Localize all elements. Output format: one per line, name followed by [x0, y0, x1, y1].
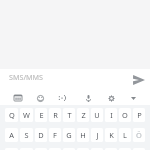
button[interactable]: Q [5, 108, 18, 122]
button[interactable]: K [105, 128, 117, 142]
button[interactable]: J [91, 128, 103, 142]
button[interactable]: U [91, 108, 103, 122]
button[interactable]: S [20, 128, 33, 142]
button[interactable]: O [119, 108, 131, 122]
staticText: G [66, 130, 72, 140]
button[interactable]: Voice input [77, 89, 99, 107]
button[interactable]: Emoji [29, 89, 51, 107]
button[interactable]: Send [127, 70, 150, 90]
staticText: L [123, 130, 127, 140]
button[interactable]: Ö [133, 128, 145, 142]
staticText: O [122, 110, 128, 120]
button[interactable]: Keyboard settings [100, 89, 122, 107]
staticText: R [53, 110, 58, 120]
button[interactable]: D [35, 128, 47, 142]
button[interactable]: W [20, 108, 33, 122]
button[interactable]: Z [77, 108, 89, 122]
button[interactable]: L [119, 128, 131, 142]
button[interactable]: Emoticons [51, 89, 73, 107]
staticText: SMS/MMS [9, 72, 44, 82]
button[interactable]: E [35, 108, 47, 122]
button[interactable]: I [105, 108, 117, 122]
button[interactable]: More options [122, 89, 144, 107]
button[interactable]: A [5, 128, 18, 142]
staticText: W [23, 110, 30, 120]
staticText: F [53, 130, 57, 140]
staticText: E [39, 110, 44, 120]
staticText: U [94, 110, 100, 120]
button[interactable]: G [63, 128, 75, 142]
staticText: I [110, 110, 113, 120]
button[interactable]: P [133, 108, 145, 122]
staticText: Z [81, 110, 86, 120]
staticText: A [9, 130, 14, 140]
staticText: Q [9, 110, 15, 120]
button[interactable]: H [77, 128, 89, 142]
button[interactable]: R [49, 108, 61, 122]
staticText: D [38, 130, 44, 140]
staticText: K [109, 130, 114, 140]
staticText: Ö [136, 130, 142, 140]
button[interactable]: SMS/MMS [0, 68, 126, 86]
staticText: T [67, 110, 72, 120]
staticText: J [96, 130, 99, 140]
staticText: P [137, 110, 142, 120]
staticText: S [24, 130, 29, 140]
button[interactable]: F [49, 128, 61, 142]
staticText: H [80, 130, 86, 140]
button[interactable]: Stickers [7, 89, 29, 107]
button[interactable]: T [63, 108, 75, 122]
